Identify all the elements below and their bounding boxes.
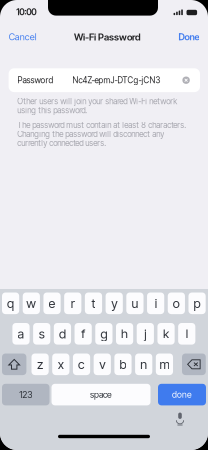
button[interactable]: d <box>54 323 71 345</box>
staticText: Password <box>18 75 54 85</box>
staticText: h <box>121 326 128 341</box>
staticText: t <box>91 296 95 311</box>
button[interactable]: u <box>126 292 143 314</box>
staticText: g <box>100 326 107 341</box>
staticText: b <box>119 357 126 372</box>
staticText: j <box>144 326 146 341</box>
staticText: r <box>71 296 75 311</box>
staticText: done <box>172 389 192 400</box>
button[interactable]: Dictate <box>172 411 187 426</box>
staticText: a <box>17 326 24 341</box>
button[interactable]: e <box>43 292 61 314</box>
staticText: Wi-Fi Password <box>74 31 141 43</box>
button[interactable]: i <box>147 292 164 314</box>
staticText: x <box>58 357 64 372</box>
button[interactable]: v <box>94 353 111 375</box>
button[interactable]: 123 <box>2 384 49 405</box>
staticText: q <box>7 296 14 311</box>
button[interactable]: Shift <box>2 353 26 375</box>
staticText: 10:00 <box>16 7 36 17</box>
staticText: space <box>90 389 112 400</box>
button[interactable]: w <box>23 292 40 314</box>
staticText: m <box>159 357 169 372</box>
button[interactable]: m <box>156 353 173 375</box>
staticText: The password must contain at least 8 cha… <box>17 120 186 148</box>
staticText: 123 <box>19 389 32 400</box>
staticText: w <box>26 296 36 311</box>
button[interactable]: r <box>64 292 81 314</box>
button[interactable]: s <box>33 323 50 345</box>
staticText: p <box>194 296 201 311</box>
staticText: e <box>48 296 55 311</box>
staticText: d <box>59 326 66 341</box>
button[interactable]: n <box>135 353 152 375</box>
staticText: Cancel <box>9 31 37 42</box>
button[interactable]: o <box>168 292 185 314</box>
button[interactable]: Cancel <box>9 26 37 47</box>
button[interactable]: j <box>137 323 154 345</box>
staticText: o <box>173 296 180 311</box>
button[interactable]: Done <box>178 26 199 47</box>
staticText: Done <box>178 31 199 42</box>
staticText: z <box>37 357 43 372</box>
button[interactable]: l <box>178 323 195 345</box>
staticText: v <box>99 357 105 372</box>
button[interactable]: Clear text <box>182 76 191 85</box>
staticText: u <box>131 296 138 311</box>
button[interactable]: a <box>12 323 30 345</box>
staticText: y <box>111 296 117 311</box>
button[interactable]: k <box>157 323 175 345</box>
button[interactable]: g <box>95 323 112 345</box>
staticText: s <box>39 326 45 341</box>
button[interactable]: Delete <box>182 353 206 375</box>
staticText: i <box>155 296 157 311</box>
button[interactable]: q <box>2 292 19 314</box>
button[interactable]: done <box>158 384 206 405</box>
staticText: Other users will join your shared Wi-Fi … <box>17 96 177 115</box>
button[interactable]: x <box>52 353 69 375</box>
staticText: f <box>81 326 85 341</box>
button[interactable]: t <box>85 292 102 314</box>
button[interactable]: h <box>116 323 133 345</box>
staticText: l <box>186 326 188 341</box>
button[interactable]: z <box>31 353 49 375</box>
button[interactable]: f <box>75 323 92 345</box>
button[interactable]: c <box>73 353 90 375</box>
staticText: Nc4Z-epmJ-DTCg-jCN3 <box>73 75 161 85</box>
button[interactable]: space <box>51 384 150 405</box>
staticText: k <box>163 326 169 341</box>
staticText: c <box>78 357 85 372</box>
button[interactable]: b <box>114 353 132 375</box>
staticText: n <box>140 357 147 372</box>
button[interactable]: y <box>106 292 123 314</box>
button[interactable]: p <box>188 292 206 314</box>
